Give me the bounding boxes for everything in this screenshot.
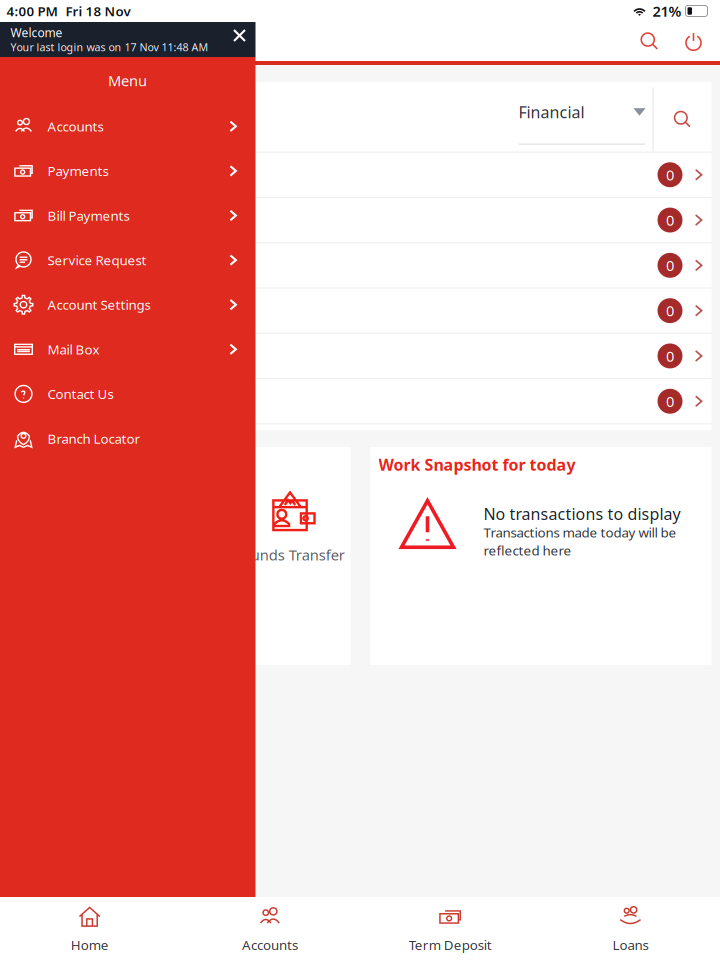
button[interactable]: Close bbox=[224, 22, 255, 49]
button[interactable]: Mail Box bbox=[0, 327, 255, 372]
button[interactable]: 0 bbox=[9, 379, 711, 423]
staticText: 0 bbox=[666, 346, 674, 366]
staticText: Service Request bbox=[47, 251, 146, 269]
staticText: Payments bbox=[47, 162, 108, 180]
staticText: Contact Us bbox=[47, 385, 113, 403]
button[interactable]: 0 bbox=[9, 198, 711, 242]
button[interactable]: Log out bbox=[671, 22, 715, 61]
button[interactable]: 0 bbox=[9, 243, 711, 287]
staticText: Transactions made today will be bbox=[483, 523, 676, 541]
staticText: Work Snapshot for today bbox=[378, 454, 575, 475]
staticText: Accounts bbox=[242, 936, 298, 954]
button[interactable]: Funds Transfer bbox=[237, 447, 350, 665]
button[interactable]: Service Request bbox=[0, 238, 255, 282]
staticText: Term Deposit bbox=[409, 936, 492, 954]
button[interactable]: Loans bbox=[540, 897, 720, 960]
staticText: reflected here bbox=[483, 541, 571, 559]
button[interactable]: Payments bbox=[0, 149, 255, 193]
staticText: Home bbox=[71, 936, 109, 954]
button[interactable]: Contact Us bbox=[0, 372, 255, 416]
button[interactable]: Term Deposit bbox=[360, 897, 540, 960]
staticText: Bill Payments bbox=[47, 207, 129, 224]
staticText: 0 bbox=[666, 165, 674, 184]
staticText: Financial bbox=[518, 101, 584, 123]
button[interactable]: Account Settings bbox=[0, 282, 255, 327]
button[interactable]: Home bbox=[0, 897, 180, 960]
staticText: No transactions to display bbox=[483, 503, 680, 524]
staticText: Menu bbox=[108, 71, 147, 90]
button[interactable]: Funds Transfer bbox=[9, 447, 123, 665]
staticText: Fri 18 Nov bbox=[65, 2, 130, 20]
staticText: 0 bbox=[666, 391, 674, 411]
button[interactable]: Search accounts bbox=[653, 88, 711, 152]
staticText: 0 bbox=[666, 210, 674, 230]
staticText: Your last login was on 17 Nov 11:48 AM bbox=[10, 40, 208, 54]
staticText: Branch Locator bbox=[47, 430, 140, 447]
button[interactable]: Search bbox=[627, 22, 671, 61]
staticText: Funds Transfer bbox=[243, 545, 345, 564]
staticText: 21% bbox=[652, 1, 681, 21]
staticText: Account Settings bbox=[47, 296, 150, 313]
button[interactable]: 0 bbox=[9, 334, 711, 378]
staticText: 4:00 PM bbox=[6, 2, 57, 20]
button[interactable]: Bill Payments bbox=[0, 193, 255, 238]
button[interactable]: 0 bbox=[9, 288, 711, 333]
staticText: 0 bbox=[666, 301, 674, 320]
button[interactable]: Accounts bbox=[0, 104, 255, 149]
button[interactable]: 0 bbox=[9, 153, 711, 197]
staticText: Accounts bbox=[47, 117, 103, 135]
staticText: Loans bbox=[612, 936, 648, 954]
staticText: 0 bbox=[666, 256, 674, 275]
staticText: Welcome bbox=[10, 24, 62, 40]
button[interactable]: Branch Locator bbox=[0, 416, 255, 461]
staticText: Mail Box bbox=[47, 340, 99, 358]
button[interactable]: Accounts bbox=[180, 897, 360, 960]
